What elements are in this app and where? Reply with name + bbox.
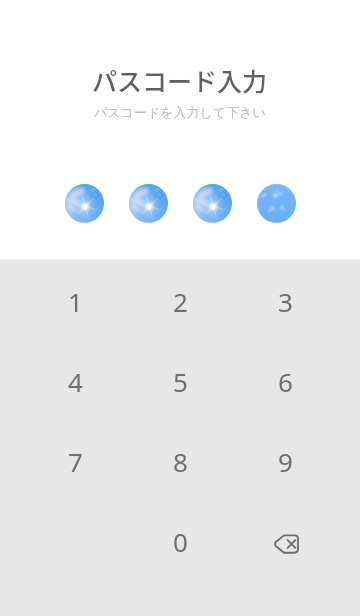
staticText: 5 [173, 364, 188, 399]
staticText: パスコード入力 [92, 62, 268, 98]
staticText: 8 [173, 444, 188, 479]
staticText: 3 [278, 284, 293, 319]
button[interactable]: 0 [128, 501, 233, 581]
button[interactable]: 3 [233, 261, 338, 341]
staticText: 1 [68, 284, 83, 319]
button[interactable]: Delete [233, 501, 338, 581]
button[interactable]: 2 [128, 261, 233, 341]
staticText: 7 [68, 444, 83, 479]
other: Delete [273, 534, 299, 554]
button[interactable]: 1 [22, 261, 128, 341]
staticText: 0 [173, 524, 188, 559]
staticText: 9 [278, 444, 293, 479]
button[interactable]: 8 [128, 421, 233, 501]
staticText: 4 [68, 364, 83, 399]
button[interactable]: 4 [22, 341, 128, 421]
button[interactable]: 9 [233, 421, 338, 501]
staticText: 2 [173, 284, 188, 319]
staticText: パスコードを入力して下さい [94, 104, 266, 120]
button[interactable]: 5 [128, 341, 233, 421]
button[interactable]: 6 [233, 341, 338, 421]
button[interactable]: 7 [22, 421, 128, 501]
staticText: 6 [278, 364, 293, 399]
